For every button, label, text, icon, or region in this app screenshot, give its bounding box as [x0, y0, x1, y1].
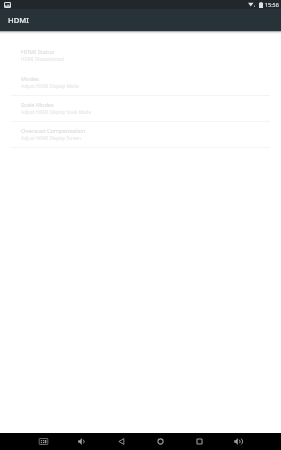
staticText: Adjust HDMI Display Mode	[21, 83, 79, 89]
staticText: Modes	[21, 75, 39, 83]
button[interactable]: Home	[152, 433, 169, 450]
button[interactable]: Screenshot	[35, 433, 52, 450]
button[interactable]: Overscan Compensation	[0, 122, 281, 147]
staticText: Scale Modes	[21, 101, 54, 109]
button[interactable]: Modes	[0, 70, 281, 95]
button[interactable]: HDMI Status	[0, 43, 281, 70]
staticText: HDMI Status	[21, 48, 55, 56]
staticText: 15:56	[265, 1, 279, 8]
staticText: Adjust HDMI Display Scale Mode	[21, 109, 92, 115]
staticText: HDMI	[8, 15, 29, 25]
button[interactable]: Volume down	[74, 433, 91, 450]
button[interactable]: Scale Modes	[0, 96, 281, 121]
button[interactable]: Volume up	[230, 433, 247, 450]
button[interactable]: Back	[113, 433, 130, 450]
staticText: Adjust HDMI Display Screen	[21, 135, 81, 141]
staticText: HDMI Disconnected	[21, 56, 64, 62]
button[interactable]: Recents	[191, 433, 208, 450]
staticText: Overscan Compensation	[21, 127, 86, 135]
